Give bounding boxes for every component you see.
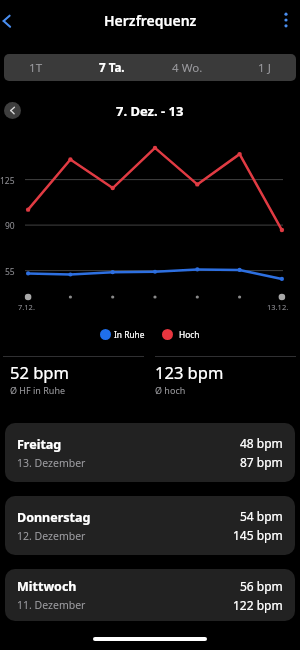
staticText: Freitag xyxy=(17,436,62,453)
staticText: 48 bpm xyxy=(240,435,283,451)
staticText: 90 xyxy=(5,220,15,232)
staticText: 52 bpm xyxy=(10,361,69,383)
staticText: 145 bpm xyxy=(233,527,283,543)
staticText: 13. Dezember xyxy=(17,456,86,470)
button[interactable]: Back xyxy=(0,2,34,36)
staticText: 87 bpm xyxy=(240,454,283,470)
button[interactable]: 1 J xyxy=(230,54,295,81)
staticText: 13.12. xyxy=(267,302,289,312)
staticText: 125 xyxy=(0,175,15,187)
staticText: Herzfrequenz xyxy=(104,11,197,30)
button[interactable]: Previous period xyxy=(4,102,21,119)
staticText: 54 bpm xyxy=(240,508,283,524)
staticText: 7.12. xyxy=(18,302,35,312)
staticText: Ø hoch xyxy=(155,384,186,396)
staticText: 1T xyxy=(29,60,43,76)
staticText: 122 bpm xyxy=(233,597,283,613)
staticText: Ø HF in Ruhe xyxy=(10,384,66,396)
button[interactable]: Mittwoch xyxy=(5,569,295,621)
button[interactable]: Freitag xyxy=(5,423,295,482)
button[interactable]: 1T xyxy=(4,54,77,81)
button[interactable]: 7 Ta. xyxy=(77,54,153,81)
button[interactable]: More options xyxy=(266,2,300,36)
staticText: 11. Dezember xyxy=(17,598,86,612)
staticText: Mittwoch xyxy=(17,578,77,595)
staticText: In Ruhe xyxy=(114,329,145,340)
staticText: 55 xyxy=(5,266,15,278)
staticText: 7. Dez. - 13 xyxy=(116,102,184,120)
staticText: Hoch xyxy=(179,329,200,340)
staticText: Donnerstag xyxy=(17,509,91,526)
staticText: 12. Dezember xyxy=(17,529,86,543)
staticText: 56 bpm xyxy=(240,578,283,594)
button[interactable]: Donnerstag xyxy=(5,496,295,555)
button[interactable]: 4 Wo. xyxy=(153,54,230,81)
staticText: 4 Wo. xyxy=(172,60,203,76)
staticText: 123 bpm xyxy=(155,361,224,383)
staticText: 1 J xyxy=(258,60,271,76)
staticText: 7 Ta. xyxy=(99,60,125,76)
